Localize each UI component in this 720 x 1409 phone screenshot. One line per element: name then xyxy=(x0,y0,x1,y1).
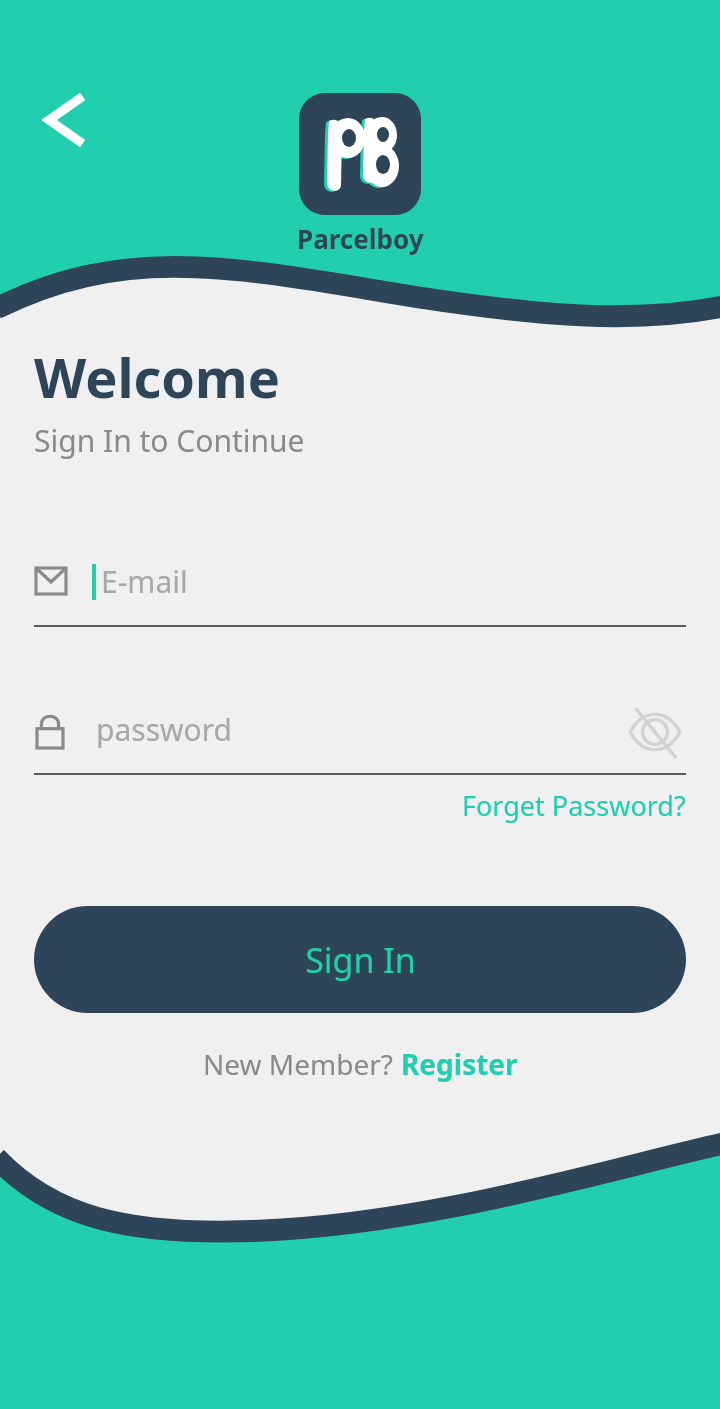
button[interactable]: Forget Password? xyxy=(462,787,686,824)
staticText: New Member? xyxy=(203,1045,401,1083)
staticText: Register xyxy=(401,1045,518,1083)
button[interactable]: Sign In xyxy=(34,906,686,1013)
button[interactable]: password xyxy=(34,683,686,775)
button[interactable]: Back xyxy=(26,82,102,158)
button[interactable]: Register xyxy=(401,1045,518,1083)
staticText: E-mail xyxy=(101,561,188,602)
staticText: Sign In to Continue xyxy=(34,420,305,461)
staticText: Parcelboy xyxy=(297,221,424,256)
staticText: Forget Password? xyxy=(462,787,686,824)
button[interactable]: E-mail xyxy=(34,535,686,627)
staticText: Sign In xyxy=(305,937,416,983)
staticText: Welcome xyxy=(34,340,280,414)
staticText: password xyxy=(96,709,232,750)
button[interactable]: Show password xyxy=(624,701,686,763)
